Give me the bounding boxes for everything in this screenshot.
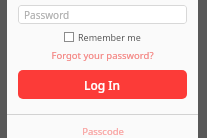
button[interactable]: Forgot your password?	[45, 47, 160, 64]
button[interactable]: Log In	[18, 70, 187, 99]
button[interactable]: Password	[18, 5, 187, 24]
staticText: Password	[24, 8, 70, 22]
button[interactable]: Passcode	[74, 123, 132, 138]
button[interactable]: Remember me	[64, 31, 141, 43]
staticText: Log In	[84, 77, 121, 93]
staticText: Remember me	[78, 31, 141, 43]
